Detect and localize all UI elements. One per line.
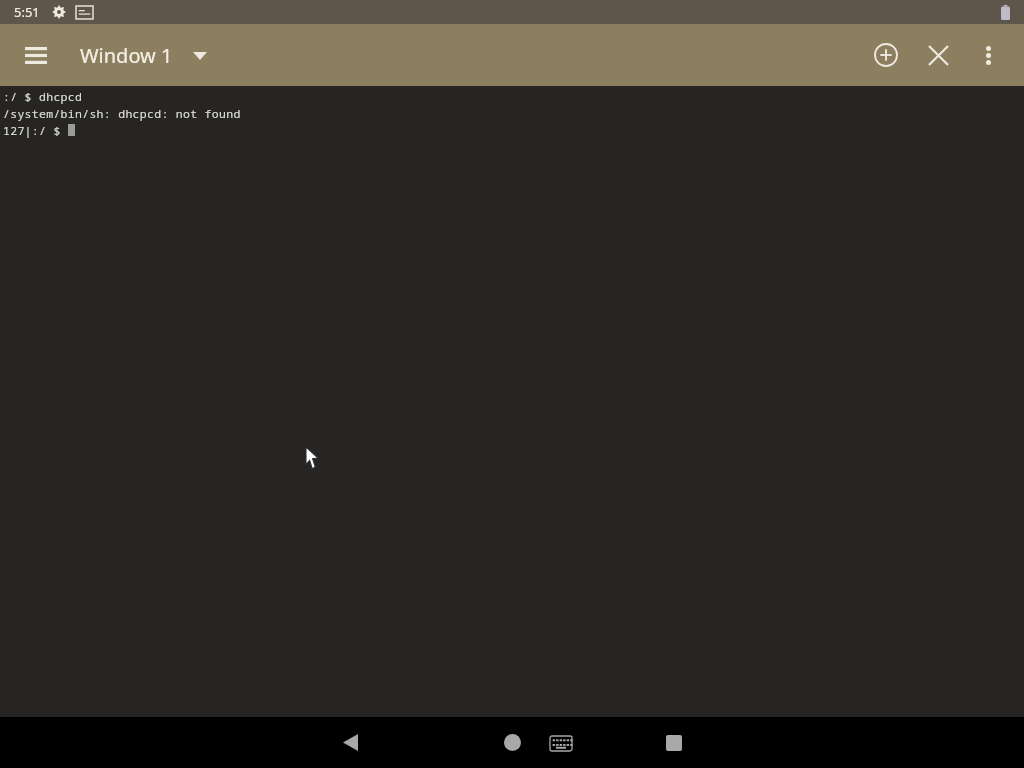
button[interactable]: New window [862, 31, 910, 79]
button[interactable]: Switch keyboard [538, 720, 584, 766]
staticText: /system/bin/sh: dhcpcd: not found [3, 106, 241, 122]
button[interactable]: More options [964, 31, 1012, 79]
button[interactable]: Recent apps [644, 717, 704, 768]
button[interactable]: Window 1 [78, 36, 209, 75]
button[interactable]: Home [482, 717, 542, 768]
staticText: 5:51 [14, 3, 40, 21]
staticText: :/ $ dhcpcd [3, 89, 83, 105]
button[interactable]: Back [320, 717, 380, 768]
staticText: Window 1 [80, 42, 173, 69]
button[interactable]: Close window [914, 31, 962, 79]
button[interactable]: Open navigation menu [14, 33, 58, 77]
staticText: 127|:/ $ [3, 123, 68, 139]
button[interactable]: :/ $ dhcpcd [0, 86, 1024, 717]
